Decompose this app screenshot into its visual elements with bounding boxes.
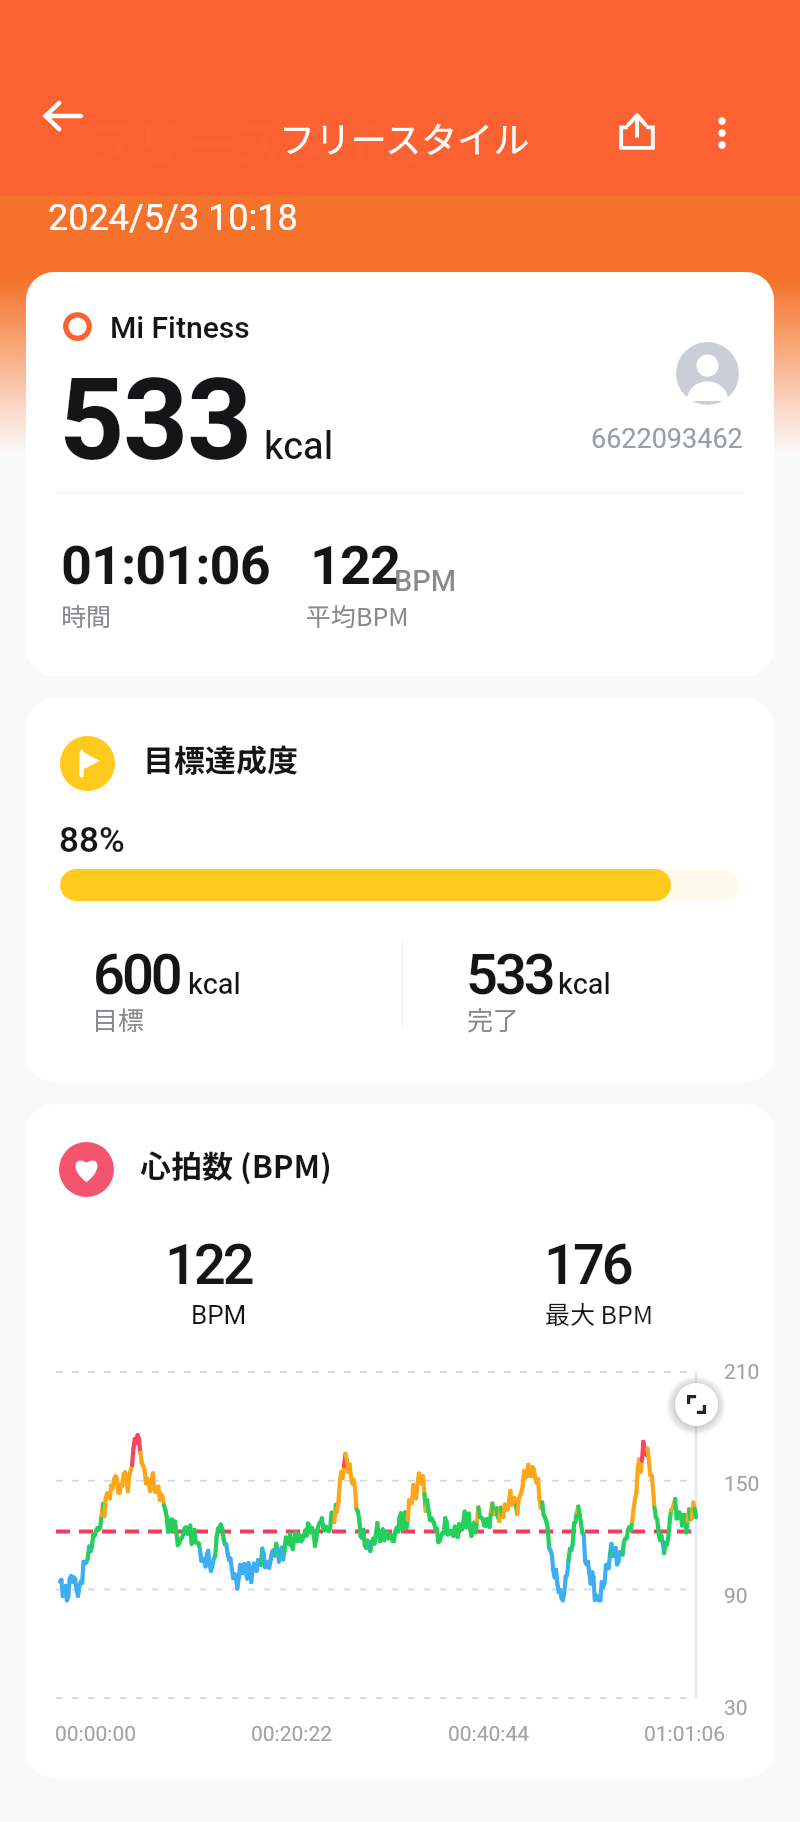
staticText: 176	[544, 1225, 631, 1307]
button[interactable]: Expand chart	[675, 1383, 718, 1426]
staticText: 目標達成度	[143, 736, 298, 781]
staticText: 心拍数 (BPM)	[140, 1142, 332, 1187]
staticText: 533	[466, 935, 553, 1017]
staticText: 目標	[92, 1000, 145, 1038]
staticText: kcal	[558, 964, 611, 1007]
staticText: 210	[724, 1357, 760, 1388]
staticText: 2024/5/3 10:18	[48, 192, 298, 245]
staticText: BPM	[191, 1297, 247, 1335]
staticText: kcal	[188, 964, 241, 1007]
staticText: フリースタイル	[279, 111, 530, 163]
staticText: 88%	[59, 815, 125, 866]
staticText: 00:40:44	[448, 1719, 530, 1750]
button[interactable]: Share	[604, 98, 670, 164]
staticText: kcal	[264, 419, 334, 475]
staticText: BPM	[394, 561, 457, 604]
staticText: 平均BPM	[306, 597, 409, 633]
staticText: 最大 BPM	[545, 1295, 654, 1331]
staticText: 533	[59, 340, 251, 507]
staticText: 600	[93, 935, 180, 1017]
staticText: 01:01:06	[61, 527, 270, 606]
staticText: 00:20:22	[251, 1719, 333, 1750]
staticText: 150	[724, 1469, 760, 1500]
staticText: 完了	[467, 1000, 520, 1038]
staticText: 01:01:06	[644, 1719, 726, 1750]
staticText: 90	[724, 1581, 748, 1612]
staticText: 6622093462	[591, 420, 743, 460]
button[interactable]: Back	[31, 83, 97, 149]
staticText: 122	[310, 527, 401, 606]
staticText: 00:00:00	[55, 1719, 137, 1750]
staticText: 時間	[61, 597, 112, 633]
button[interactable]: More options	[689, 100, 755, 166]
staticText: 30	[724, 1693, 748, 1724]
staticText: 122	[165, 1225, 252, 1307]
staticText: Mi Fitness	[110, 307, 250, 351]
staticText: フリースタイル	[86, 104, 434, 176]
